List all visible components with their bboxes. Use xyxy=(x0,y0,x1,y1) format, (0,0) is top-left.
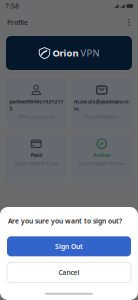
button[interactable]: More options xyxy=(123,15,135,29)
staticText: Are you sure you want to sign out? xyxy=(8,216,122,225)
staticText: Profile xyxy=(7,18,28,27)
button[interactable]: Paid xyxy=(6,133,66,182)
staticText: partner9840s14312115 xyxy=(9,98,63,112)
staticText: VPN Username xyxy=(18,113,55,120)
button[interactable]: Purchase xyxy=(86,279,116,299)
staticText: m.awais@purevpn.com xyxy=(74,98,130,112)
button[interactable]: Sign Out xyxy=(7,236,131,256)
staticText: Orion xyxy=(52,47,78,59)
button[interactable]: Connection xyxy=(22,279,52,299)
staticText: 7:58 xyxy=(5,2,19,10)
staticText: Email Address xyxy=(85,113,119,120)
staticText: Cancel xyxy=(58,268,79,277)
staticText: VPN xyxy=(80,47,99,59)
staticText: Subscription Status xyxy=(78,160,125,167)
button[interactable]: m.awais@purevpn.com xyxy=(71,79,132,128)
staticText: Sign Out xyxy=(55,242,83,251)
staticText: Subscription Type xyxy=(15,160,58,167)
button[interactable]: Active xyxy=(71,133,132,182)
staticText: Active xyxy=(93,151,110,159)
staticText: Paid xyxy=(31,151,42,159)
button[interactable]: Cancel xyxy=(7,262,131,282)
button[interactable]: partner9840s14312115 xyxy=(6,79,66,128)
